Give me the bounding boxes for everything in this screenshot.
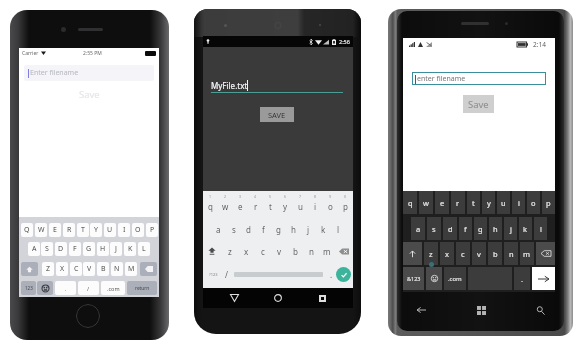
button[interactable]: / (78, 281, 99, 295)
button[interactable]: J (110, 242, 122, 256)
button[interactable]: M (125, 262, 137, 276)
button[interactable]: s (427, 217, 441, 240)
button[interactable]: Q (21, 223, 33, 237)
button[interactable]: .com (444, 267, 466, 290)
button[interactable]: Shift (403, 242, 422, 265)
button[interactable]: 7 (293, 194, 308, 214)
button[interactable]: H (97, 242, 109, 256)
button[interactable]: I (118, 223, 130, 237)
button[interactable]: e (435, 191, 449, 214)
button[interactable]: 9 (323, 194, 338, 214)
button[interactable]: &123 (403, 267, 424, 290)
button[interactable]: P (146, 223, 158, 237)
button[interactable]: Back (221, 288, 247, 308)
button[interactable]: g (271, 219, 286, 239)
button[interactable]: b (488, 242, 502, 265)
button[interactable]: U (104, 223, 116, 237)
button[interactable]: y (482, 191, 495, 214)
button[interactable]: f (256, 219, 271, 239)
button[interactable]: Save (19, 88, 159, 100)
button[interactable]: 1 (203, 194, 218, 214)
button[interactable]: G (83, 242, 95, 256)
button[interactable]: q (403, 191, 417, 214)
button[interactable]: V (83, 262, 95, 276)
button[interactable]: 2 (218, 194, 233, 214)
button[interactable]: w (419, 191, 433, 214)
button[interactable]: F (69, 242, 81, 256)
button[interactable]: .com (101, 281, 125, 295)
button[interactable]: key (21, 281, 36, 295)
button[interactable]: z (424, 242, 438, 265)
button[interactable]: m (520, 242, 534, 265)
button[interactable]: 5 (263, 194, 278, 214)
button[interactable]: Backspace (536, 242, 555, 265)
button[interactable]: Backspace (335, 241, 353, 261)
button[interactable]: E (49, 223, 61, 237)
button[interactable]: T (77, 223, 89, 237)
button[interactable]: n (504, 242, 518, 265)
button[interactable]: / (221, 264, 232, 285)
button[interactable]: g (474, 217, 487, 240)
button[interactable]: r (451, 191, 465, 214)
button[interactable]: s (226, 219, 241, 239)
button[interactable]: Save (463, 95, 494, 113)
button[interactable]: Enter filename (24, 65, 154, 81)
button[interactable]: c (255, 241, 271, 261)
button[interactable]: B (97, 262, 109, 276)
button[interactable]: o (527, 191, 540, 214)
button[interactable]: a (210, 219, 226, 239)
button[interactable]: f (459, 217, 472, 240)
button[interactable]: . (514, 267, 530, 290)
button[interactable]: O (132, 223, 144, 237)
button[interactable]: L (138, 242, 150, 256)
button[interactable]: j (301, 219, 316, 239)
button[interactable]: d (443, 217, 457, 240)
button[interactable]: i (512, 191, 525, 214)
button[interactable]: l (534, 217, 547, 240)
button[interactable]: h (286, 219, 301, 239)
button[interactable]: Shift (21, 262, 38, 276)
button[interactable]: Enter (532, 267, 555, 290)
button[interactable]: v (472, 242, 486, 265)
button[interactable]: Recents (309, 288, 335, 308)
button[interactable]: R (63, 223, 75, 237)
button[interactable]: d (241, 219, 256, 239)
button[interactable]: u (497, 191, 510, 214)
button[interactable]: c (456, 242, 470, 265)
button[interactable]: a (411, 217, 425, 240)
button[interactable]: Emoji (426, 267, 442, 290)
button[interactable]: key (37, 281, 53, 295)
button[interactable]: Enter (336, 267, 351, 282)
button[interactable]: x (238, 241, 255, 261)
button[interactable]: Home (265, 288, 291, 308)
button[interactable]: . (55, 281, 76, 295)
button[interactable]: D (55, 242, 67, 256)
button[interactable]: N (111, 262, 123, 276)
button[interactable]: p (542, 191, 555, 214)
button[interactable]: enter filename (412, 72, 546, 85)
button[interactable]: j (504, 217, 517, 240)
button[interactable]: n (303, 241, 319, 261)
button[interactable]: ?123 (205, 264, 221, 285)
button[interactable]: S (41, 242, 53, 256)
button[interactable]: Z (42, 262, 54, 276)
button[interactable]: Y (90, 223, 102, 237)
button[interactable]: A (28, 242, 40, 256)
button[interactable]: v (271, 241, 287, 261)
button[interactable]: Shift (203, 241, 221, 261)
button[interactable]: C (70, 262, 82, 276)
button[interactable]: h (489, 217, 502, 240)
button[interactable]: t (467, 191, 480, 214)
button[interactable]: . (326, 264, 336, 285)
button[interactable]: Search (529, 300, 551, 320)
button[interactable]: X (56, 262, 68, 276)
button[interactable]: k (316, 219, 331, 239)
button[interactable]: 0 (338, 194, 353, 214)
button[interactable]: Back (410, 300, 432, 320)
button[interactable]: W (35, 223, 47, 237)
button[interactable]: 8 (308, 194, 323, 214)
button[interactable]: 3 (233, 194, 248, 214)
button[interactable]: Start (470, 300, 492, 320)
